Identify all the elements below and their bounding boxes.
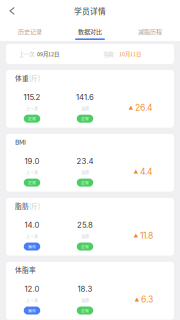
staticText: 偏低 (28, 244, 36, 249)
staticText: 数据对比 (78, 27, 102, 36)
staticText: 正常 (28, 116, 36, 121)
staticText: 减脂历程 (138, 27, 162, 36)
staticText: 26.4 (135, 102, 153, 113)
staticText: 偏低 (28, 308, 36, 313)
staticText: 上一次: (19, 50, 35, 58)
staticText: 115.2 (23, 92, 40, 102)
staticText: 脂肪 (15, 201, 29, 211)
staticText: 学员详情 (74, 5, 106, 17)
staticText: 上一次 (26, 170, 38, 175)
staticText: 正常 (81, 244, 89, 249)
staticText: 体重 (15, 73, 29, 83)
staticText: 正常 (81, 116, 89, 121)
staticText: 12.0 (24, 284, 39, 294)
staticText: 10月11日 (119, 50, 141, 58)
staticText: 19.0 (24, 156, 39, 166)
button[interactable]: 减脂历程 (120, 22, 180, 41)
staticText: 18.3 (77, 284, 92, 294)
staticText: 当前 (81, 106, 89, 112)
button[interactable]: 历史记录 (0, 22, 60, 41)
staticText: (斤) (29, 73, 40, 83)
staticText: 当前 (81, 170, 89, 175)
staticText: 上一次 (26, 106, 38, 112)
staticText: 23.4 (76, 156, 93, 166)
staticText: 09月12日 (37, 50, 59, 58)
staticText: 体脂率 (15, 265, 36, 275)
staticText: (斤) (29, 201, 40, 211)
staticText: 上一次 (26, 234, 38, 239)
staticText: 4.4 (140, 166, 153, 177)
staticText: 上一次 (26, 298, 38, 303)
staticText: 当前: (103, 50, 114, 58)
button[interactable]: 数据对比 (60, 22, 120, 41)
staticText: 6.3 (141, 294, 153, 305)
staticText: 正常 (81, 180, 89, 185)
staticText: 正常 (81, 308, 89, 313)
staticText: 历史记录 (18, 27, 42, 36)
staticText: 当前 (81, 298, 89, 303)
button[interactable]: 返回 (0, 0, 23, 22)
staticText: 141.6 (76, 92, 94, 102)
staticText: 11.8 (140, 230, 153, 241)
staticText: 正常 (28, 180, 36, 185)
staticText: 25.8 (77, 220, 93, 230)
staticText: 14.0 (24, 220, 39, 230)
staticText: 当前 (81, 234, 89, 239)
staticText: BMI (15, 137, 26, 147)
